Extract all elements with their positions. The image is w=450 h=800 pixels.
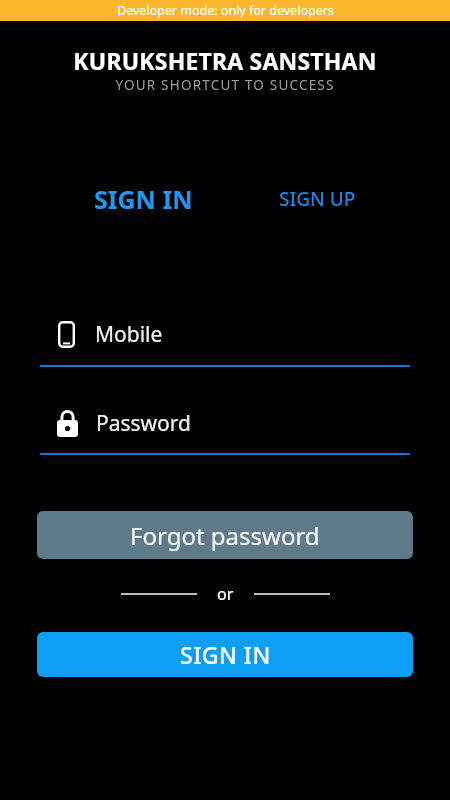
staticText: Forgot password [130,519,320,552]
button[interactable]: SIGN IN [94,182,193,216]
staticText: SIGN UP [279,186,356,212]
staticText: SIGN IN [180,639,271,670]
button[interactable]: Password [40,409,410,455]
staticText: YOUR SHORTCUT TO SUCCESS [0,76,450,94]
button[interactable]: SIGN UP [279,186,356,212]
staticText: Developer mode: only for developers [117,2,334,19]
button[interactable]: SIGN IN [37,632,413,677]
staticText: Mobile [95,320,163,349]
staticText: KURUKSHETRA SANSTHAN [0,45,450,76]
staticText: or [217,583,234,605]
staticText: Password [96,409,191,438]
button[interactable]: Mobile [40,320,410,367]
staticText: SIGN IN [94,182,193,216]
button[interactable]: Forgot password [37,511,413,559]
